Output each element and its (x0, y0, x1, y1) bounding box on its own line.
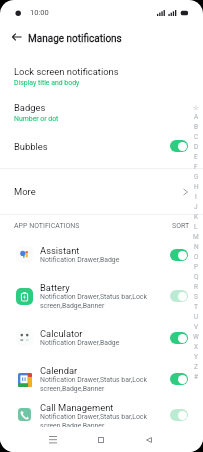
staticText: Notification Drawer,Status bar,Lock scre… (40, 293, 147, 310)
button[interactable]: Calendar (0, 356, 203, 402)
staticText: X (194, 343, 199, 351)
button[interactable]: C (189, 132, 203, 142)
button[interactable]: V (189, 322, 203, 332)
staticText: W (193, 333, 199, 341)
staticText: U (194, 313, 199, 321)
button[interactable]: X (189, 342, 203, 352)
staticText: Z (194, 363, 198, 371)
button[interactable]: # (189, 372, 203, 382)
button[interactable]: N (189, 242, 203, 252)
button[interactable]: Bubbles (0, 130, 203, 168)
staticText: 10:00 (30, 8, 49, 17)
staticText: I (195, 193, 197, 201)
staticText: Badges (14, 102, 46, 113)
button[interactable]: Q (189, 272, 203, 282)
staticText: V (194, 323, 199, 331)
button[interactable]: W (189, 332, 203, 342)
button[interactable]: J (189, 202, 203, 212)
staticText: E (194, 153, 198, 161)
button[interactable]: D (189, 142, 203, 152)
button[interactable]: Battery (0, 273, 203, 319)
staticText: C (194, 133, 199, 141)
button[interactable]: Home (85, 427, 117, 452)
staticText: More (14, 186, 36, 197)
button[interactable]: F (189, 162, 203, 172)
staticText: G (194, 173, 199, 181)
staticText: Manage notifications (28, 33, 122, 45)
staticText: A (194, 113, 199, 121)
button[interactable]: ☆ (189, 103, 203, 112)
staticText: K (194, 213, 199, 221)
button[interactable]: Assistant (0, 236, 203, 273)
staticText: H (194, 183, 199, 191)
staticText: Y (194, 353, 198, 361)
button[interactable]: H (189, 182, 203, 192)
staticText: Calendar (40, 365, 78, 376)
staticText: # (194, 373, 199, 381)
button[interactable]: SORT (172, 222, 190, 230)
button[interactable]: Back (6, 26, 28, 48)
button[interactable]: U (189, 312, 203, 322)
staticText: Assistant (40, 245, 80, 256)
staticText: APP NOTIFICATIONS (14, 222, 80, 230)
staticText: Number or dot (14, 115, 59, 123)
button[interactable]: T (189, 302, 203, 312)
staticText: D (194, 143, 199, 151)
staticText: Call Management (40, 402, 114, 413)
staticText: Notification Drawer,Badge (40, 256, 120, 264)
staticText: N (194, 243, 199, 251)
staticText: Notification Drawer,Badge (40, 339, 120, 347)
staticText: L (194, 223, 198, 231)
button[interactable]: E (189, 152, 203, 162)
staticText: F (194, 163, 198, 171)
staticText: O (194, 253, 199, 261)
staticText: Q (194, 273, 199, 281)
staticText: B (194, 123, 199, 131)
staticText: Calculator (40, 328, 83, 339)
staticText: J (194, 203, 198, 211)
staticText: P (194, 263, 199, 271)
button[interactable]: S (189, 292, 203, 302)
button[interactable]: More (0, 169, 203, 214)
button[interactable]: I (189, 192, 203, 202)
button[interactable]: Lock screen notifications (0, 58, 203, 94)
button[interactable]: A (189, 112, 203, 122)
button[interactable]: Z (189, 362, 203, 372)
staticText: Battery (40, 282, 70, 293)
staticText: Notification Drawer,Status bar,Lock scre… (40, 413, 147, 427)
button[interactable]: R (189, 282, 203, 292)
button[interactable]: Badges (0, 94, 203, 130)
staticText: Bubbles (14, 141, 48, 152)
button[interactable]: O (189, 252, 203, 262)
button[interactable]: Call Management (0, 402, 203, 427)
staticText: Lock screen notifications (14, 66, 119, 77)
button[interactable]: G (189, 172, 203, 182)
staticText: ☆ (193, 104, 199, 112)
button[interactable]: Calculator (0, 319, 203, 356)
button[interactable]: Back (133, 427, 165, 452)
staticText: Notification Drawer,Status bar,Lock scre… (40, 376, 147, 393)
button[interactable]: K (189, 212, 203, 222)
button[interactable]: B (189, 122, 203, 132)
staticText: M (193, 233, 199, 241)
button[interactable]: M (189, 232, 203, 242)
button[interactable]: Recents (37, 427, 69, 452)
staticText: Display title and body (14, 79, 80, 87)
staticText: R (194, 283, 199, 291)
staticText: S (194, 293, 198, 301)
staticText: SORT (172, 222, 190, 230)
button[interactable]: L (189, 222, 203, 232)
button[interactable]: P (189, 262, 203, 272)
staticText: T (194, 303, 198, 311)
button[interactable]: Y (189, 352, 203, 362)
